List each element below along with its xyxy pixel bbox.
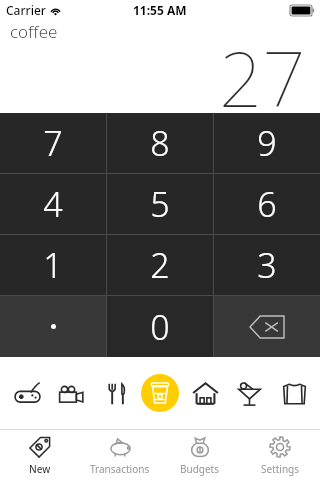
button[interactable]: 7: [0, 113, 106, 173]
staticText: coffee: [10, 20, 58, 43]
button[interactable]: 8: [107, 113, 213, 173]
button[interactable]: 9: [214, 113, 320, 173]
button[interactable]: Games: [7, 373, 47, 413]
button[interactable]: New: [0, 430, 80, 480]
staticText: Carrier: [6, 2, 46, 18]
button[interactable]: 4: [0, 174, 106, 234]
button[interactable]: Delete: [214, 296, 320, 357]
button[interactable]: Drinks: [229, 373, 269, 413]
staticText: 8: [150, 120, 170, 166]
staticText: 3: [257, 242, 277, 288]
staticText: 4: [43, 181, 63, 227]
staticText: 1: [43, 242, 63, 288]
button[interactable]: 5: [107, 174, 213, 234]
button[interactable]: Transactions: [80, 430, 160, 480]
button[interactable]: Movies: [51, 373, 91, 413]
button[interactable]: 3: [214, 235, 320, 295]
staticText: 6: [257, 181, 277, 227]
button[interactable]: Food: [96, 373, 136, 413]
staticText: New: [29, 462, 51, 476]
staticText: Transactions: [90, 462, 150, 476]
staticText: 0: [150, 304, 170, 350]
button[interactable]: 6: [214, 174, 320, 234]
staticText: 27: [219, 26, 306, 119]
button[interactable]: Clothes: [274, 373, 314, 413]
button[interactable]: Home: [185, 373, 225, 413]
staticText: Budgets: [180, 462, 220, 476]
button[interactable]: Coffee: [140, 373, 180, 413]
staticText: 5: [150, 181, 170, 227]
button[interactable]: 1: [0, 235, 106, 295]
button[interactable]: Settings: [240, 430, 320, 480]
staticText: 9: [257, 120, 277, 166]
staticText: Settings: [261, 462, 300, 476]
staticText: 11:55 AM: [133, 2, 187, 18]
button[interactable]: 2: [107, 235, 213, 295]
staticText: 7: [43, 120, 63, 166]
button[interactable]: Budgets: [160, 430, 240, 480]
staticText: 2: [150, 242, 170, 288]
button[interactable]: 0: [107, 296, 213, 357]
button[interactable]: [0, 296, 106, 357]
